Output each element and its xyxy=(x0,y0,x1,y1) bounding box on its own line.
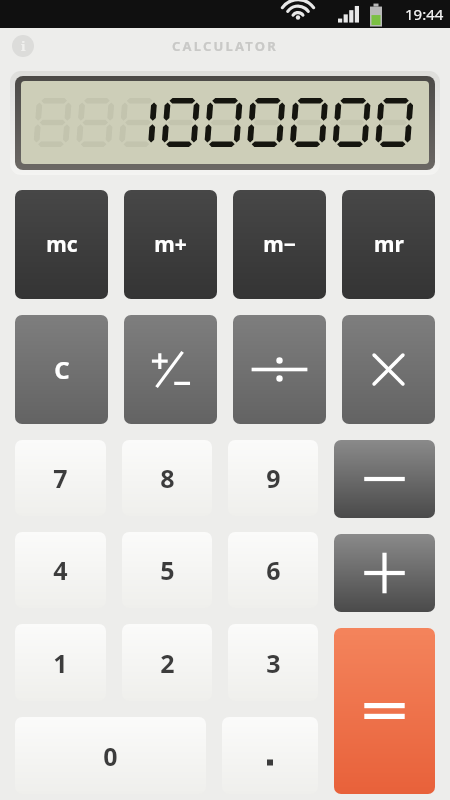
button[interactable]: Minus xyxy=(334,440,435,518)
button[interactable]: 1 xyxy=(15,624,106,701)
staticText: m+ xyxy=(154,230,187,259)
button[interactable]: C xyxy=(15,315,108,424)
staticText: m− xyxy=(263,230,296,259)
staticText: 0 xyxy=(103,739,118,773)
other: Info xyxy=(12,35,34,57)
button[interactable]: Plus xyxy=(334,534,435,612)
button[interactable]: Plus minus xyxy=(124,315,217,424)
staticText: C xyxy=(54,353,70,386)
button[interactable]: 0 xyxy=(15,717,206,794)
staticText: 8 xyxy=(160,461,175,495)
button[interactable]: 3 xyxy=(228,624,318,701)
staticText: 7 xyxy=(53,461,68,495)
staticText: 4 xyxy=(53,553,68,587)
button[interactable]: Multiply xyxy=(342,315,435,424)
staticText: 1 xyxy=(53,646,68,680)
button[interactable]: m+ xyxy=(124,190,217,299)
button[interactable]: mr xyxy=(342,190,435,299)
button[interactable]: 8 xyxy=(122,440,212,516)
button[interactable]: 5 xyxy=(122,532,212,608)
staticText: i xyxy=(21,37,26,55)
button[interactable]: Divide xyxy=(233,315,326,424)
staticText: CALCULATOR xyxy=(172,37,278,55)
staticText: 19:44 xyxy=(405,4,444,24)
button[interactable]: 2 xyxy=(122,624,212,701)
button[interactable]: Equals xyxy=(334,628,435,794)
button[interactable]: 7 xyxy=(15,440,106,516)
staticText: mr xyxy=(374,230,404,259)
staticText: mc xyxy=(46,230,78,259)
button[interactable]: m− xyxy=(233,190,326,299)
staticText: 2 xyxy=(160,646,175,680)
staticText: 3 xyxy=(266,646,281,680)
staticText: 6 xyxy=(266,553,281,587)
button[interactable]: 6 xyxy=(228,532,318,608)
staticText: 9 xyxy=(266,461,281,495)
button[interactable]: Info xyxy=(12,35,34,57)
button[interactable]: 9 xyxy=(228,440,318,516)
button[interactable]: Decimal point xyxy=(222,717,318,794)
button[interactable]: mc xyxy=(15,190,108,299)
staticText: 5 xyxy=(160,553,175,587)
button[interactable]: 4 xyxy=(15,532,106,608)
